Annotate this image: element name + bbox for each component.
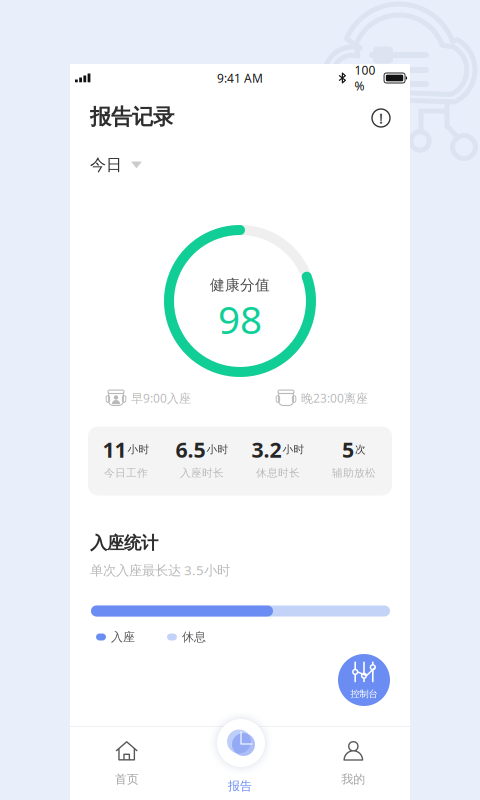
staticText: 休息时长 bbox=[256, 466, 300, 480]
staticText: 休息 bbox=[182, 630, 206, 644]
staticText: 报告记录 bbox=[90, 104, 174, 130]
staticText: 健康分值 bbox=[210, 276, 270, 294]
staticText: 晚23:00离座 bbox=[301, 390, 368, 406]
staticText: 报告 bbox=[228, 779, 252, 793]
staticText: 我的 bbox=[341, 772, 365, 787]
staticText: 今日 bbox=[90, 155, 122, 175]
staticText: 次 bbox=[355, 443, 366, 456]
staticText: 首页 bbox=[115, 772, 139, 787]
button[interactable]: 报告 bbox=[217, 719, 265, 767]
staticText: 单次入座最长达 3.5小时 bbox=[90, 561, 230, 579]
staticText: 入座 bbox=[111, 630, 135, 644]
staticText: 100% bbox=[355, 62, 376, 94]
button[interactable]: Info bbox=[366, 103, 396, 133]
button[interactable]: 今日 bbox=[90, 153, 154, 177]
staticText: 11 bbox=[102, 435, 126, 464]
staticText: 小时 bbox=[282, 443, 304, 456]
staticText: 入座时长 bbox=[180, 466, 224, 480]
staticText: ! bbox=[379, 108, 383, 128]
staticText: 控制台 bbox=[350, 688, 377, 700]
staticText: 9:41 AM bbox=[217, 70, 263, 86]
button[interactable]: 我的 bbox=[297, 726, 410, 800]
staticText: 98 bbox=[218, 293, 262, 345]
staticText: 早9:00入座 bbox=[131, 390, 191, 406]
button[interactable]: 首页 bbox=[70, 726, 183, 800]
button[interactable]: 控制台 bbox=[338, 654, 390, 706]
staticText: 小时 bbox=[206, 443, 228, 456]
staticText: 3.2 bbox=[251, 435, 281, 464]
staticText: 辅助放松 bbox=[332, 466, 376, 480]
staticText: 6.5 bbox=[175, 435, 205, 464]
staticText: 小时 bbox=[127, 443, 149, 456]
staticText: 今日工作 bbox=[104, 466, 148, 480]
staticText: 入座统计 bbox=[90, 532, 158, 554]
staticText: 5 bbox=[342, 435, 354, 464]
